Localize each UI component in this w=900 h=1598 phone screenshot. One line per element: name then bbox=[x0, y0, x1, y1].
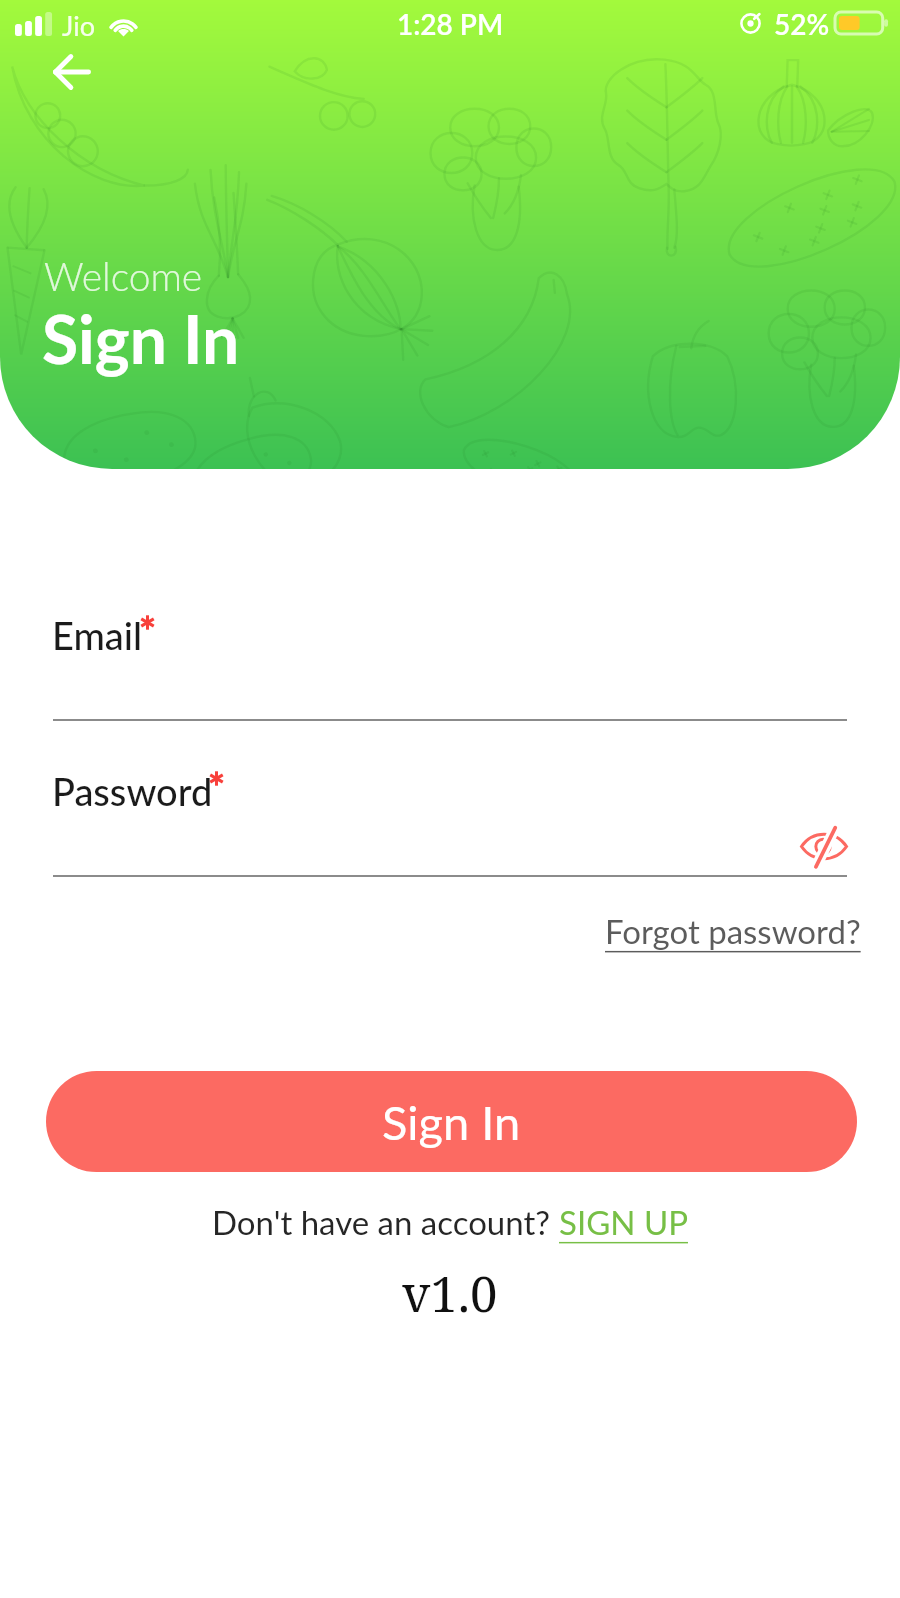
staticText: 1:28 PM bbox=[397, 7, 504, 41]
staticText: Sign In bbox=[42, 299, 240, 378]
button[interactable]: Forgot password? bbox=[603, 907, 863, 955]
staticText: v1.0 bbox=[402, 1260, 498, 1327]
staticText: Email bbox=[52, 612, 143, 658]
button[interactable]: Back bbox=[38, 38, 106, 106]
staticText: Forgot password? bbox=[605, 911, 861, 951]
staticText: SIGN UP bbox=[559, 1202, 688, 1242]
staticText: Password bbox=[52, 768, 213, 814]
button[interactable]: Sign In bbox=[46, 1071, 857, 1172]
staticText: Jio bbox=[62, 9, 95, 41]
button[interactable]: Show password bbox=[790, 812, 858, 880]
staticText: Sign In bbox=[382, 1094, 521, 1150]
staticText: 52% bbox=[774, 7, 830, 41]
staticText: Welcome bbox=[44, 253, 203, 300]
button[interactable]: SIGN UP bbox=[559, 1202, 688, 1242]
staticText: Don't have an account? bbox=[212, 1202, 559, 1242]
